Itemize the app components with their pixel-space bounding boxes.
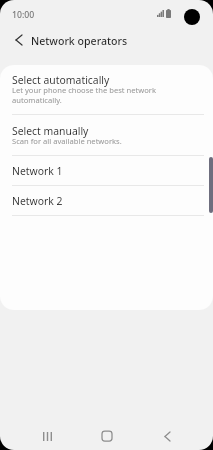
staticText: Select manually [12,124,89,138]
button[interactable]: Select automatically [0,65,213,114]
button[interactable]: Back [145,414,189,450]
button[interactable]: Recent apps [25,414,69,450]
button[interactable]: Network 2 [0,186,213,215]
staticText: Network 1 [12,164,63,178]
staticText: 10:00 [12,9,35,21]
staticText: Network 2 [12,194,63,208]
staticText: Let your phone choose the best network a… [12,85,158,105]
button[interactable]: Network 1 [0,156,213,185]
staticText: Network operators [31,34,128,48]
staticText: Scan for all available networks. [12,136,158,146]
staticText: Select automatically [12,73,110,87]
button[interactable]: Navigate up [5,26,32,53]
button[interactable]: Home [85,414,129,450]
button[interactable]: Select manually [0,115,213,155]
